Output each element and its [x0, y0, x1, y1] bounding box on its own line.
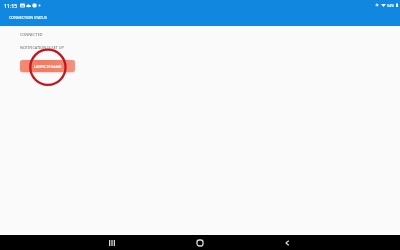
- staticText: 11:15: [4, 2, 18, 9]
- staticText: NOTIFICATION IS SET UP: [20, 45, 64, 50]
- staticText: LAUNCH GAME: [34, 64, 62, 69]
- button[interactable]: Recent apps: [104, 239, 120, 247]
- staticText: CONNECTED: [20, 32, 43, 37]
- staticText: 54%: [387, 3, 395, 8]
- button[interactable]: Home: [192, 239, 208, 247]
- staticText: CONNECTION STATUS: [9, 15, 47, 20]
- button[interactable]: Back: [279, 239, 295, 247]
- button[interactable]: LAUNCH GAME: [20, 60, 75, 72]
